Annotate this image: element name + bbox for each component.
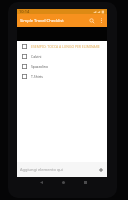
button[interactable]: T-Shirts (17, 71, 107, 81)
button[interactable]: More options (97, 16, 106, 25)
button[interactable]: Spazzolino (17, 61, 107, 71)
button[interactable]: Search (87, 16, 97, 26)
button[interactable]: Back (30, 178, 52, 187)
button[interactable]: Home (52, 178, 74, 187)
staticText: ESEMPIO: TOCCA A LUNGO PER ELIMINARE (31, 44, 105, 49)
button[interactable]: ESEMPIO: TOCCA A LUNGO PER ELIMINARE (17, 41, 107, 51)
staticText: Spazzolino (31, 64, 105, 69)
staticText: Aggiungi elemento qui (20, 167, 63, 172)
staticText: Simple Travel Checklist (20, 18, 64, 24)
staticText: Calzini (31, 54, 105, 59)
staticText: T-Shirts (31, 74, 105, 79)
staticText: 10:14 (19, 9, 30, 14)
button[interactable]: Calzini (17, 51, 107, 61)
button[interactable]: Recents (74, 178, 96, 187)
button[interactable]: Add item (96, 165, 105, 174)
